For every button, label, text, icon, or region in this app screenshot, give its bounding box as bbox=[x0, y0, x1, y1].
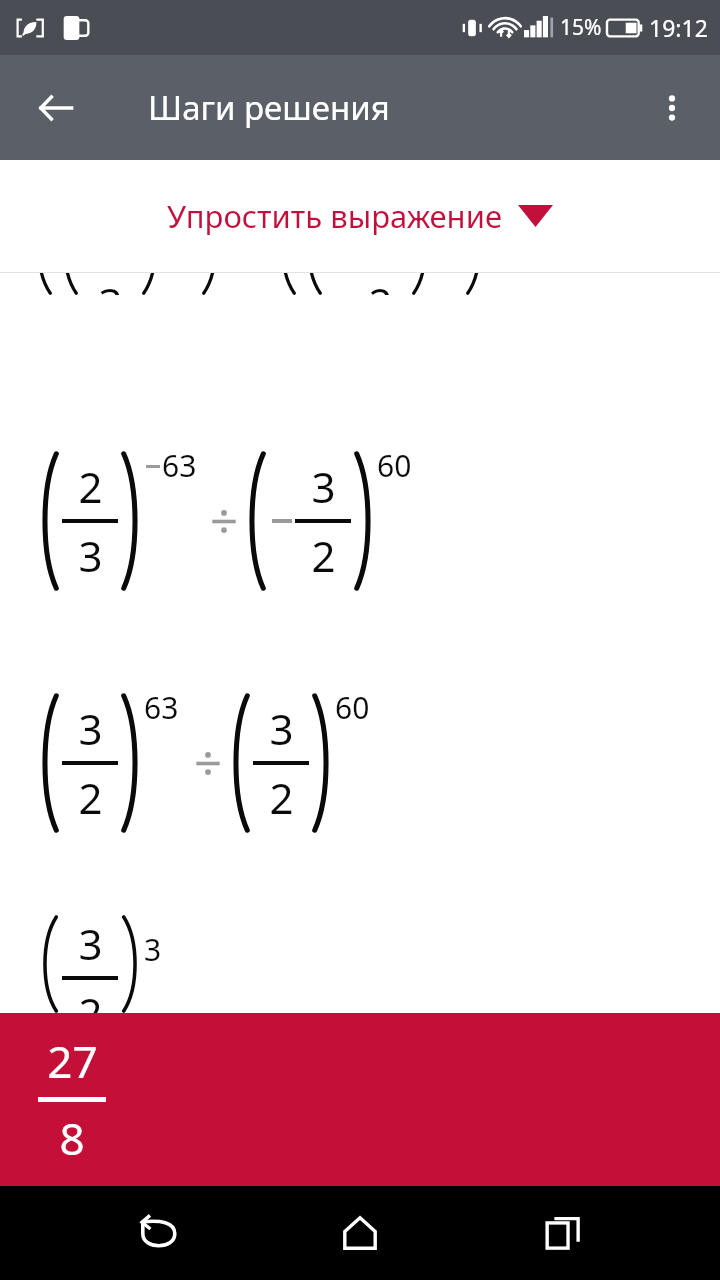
staticText: 19:12 bbox=[649, 12, 708, 43]
staticText: 63 bbox=[162, 445, 197, 486]
staticText: 3 bbox=[98, 274, 123, 295]
staticText: 27 bbox=[47, 1031, 98, 1091]
staticText: 2 bbox=[78, 458, 103, 515]
staticText: 3 bbox=[78, 527, 103, 584]
staticText: 2 bbox=[78, 984, 103, 1013]
staticText: Шаги решения bbox=[148, 85, 390, 130]
button[interactable]: Back bbox=[113, 1188, 203, 1278]
staticText: 60 bbox=[377, 445, 412, 486]
staticText: 8 bbox=[59, 1108, 85, 1168]
staticText: 2 bbox=[78, 769, 103, 826]
button[interactable]: Упростить выражение bbox=[0, 160, 720, 272]
staticText: 3 bbox=[311, 458, 336, 515]
button[interactable]: 27 bbox=[0, 1013, 720, 1186]
staticText: 2 bbox=[269, 769, 294, 826]
staticText: 2 bbox=[368, 274, 393, 295]
staticText: 60 bbox=[335, 687, 370, 728]
staticText: 63 bbox=[144, 687, 179, 728]
staticText: 3 bbox=[78, 700, 103, 757]
staticText: 2 bbox=[311, 527, 336, 584]
staticText: 3 bbox=[144, 929, 162, 970]
button[interactable]: Back bbox=[26, 78, 86, 138]
button[interactable]: Home bbox=[315, 1188, 405, 1278]
staticText: 15% bbox=[560, 13, 602, 42]
staticText: 3 bbox=[269, 700, 294, 757]
staticText: 3 bbox=[78, 915, 103, 972]
button[interactable]: More options bbox=[642, 78, 702, 138]
staticText: Упростить выражение bbox=[167, 195, 502, 237]
button[interactable]: Recent apps bbox=[518, 1188, 608, 1278]
